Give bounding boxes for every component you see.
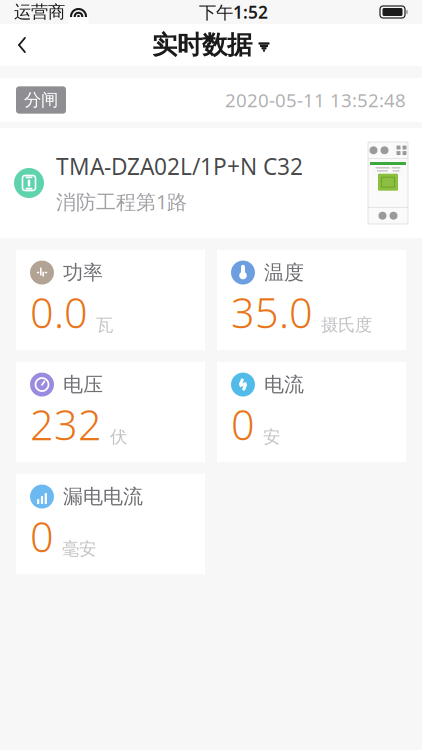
button[interactable]: 返回 xyxy=(0,25,44,65)
staticText: 消防工程第1路 xyxy=(56,188,187,215)
staticText: 运营商 xyxy=(14,1,65,23)
staticText: 毫安 xyxy=(62,538,96,560)
staticText: 实时数据 xyxy=(152,29,252,60)
button[interactable]: TMA-DZA02L/1P+N C32 xyxy=(0,128,422,238)
staticText: 2020-05-11 13:52:48 xyxy=(225,88,406,112)
staticText: 0 xyxy=(30,509,54,564)
staticText: 温度 xyxy=(264,260,304,285)
staticText: 0 xyxy=(231,397,255,452)
staticText: 安 xyxy=(263,426,280,448)
staticText: 瓦 xyxy=(96,314,113,336)
staticText: 功率 xyxy=(63,260,103,285)
staticText: 伏 xyxy=(110,426,127,448)
staticText: 232 xyxy=(30,397,102,452)
button[interactable]: 电压 xyxy=(16,362,205,462)
button[interactable]: 电流 xyxy=(217,362,406,462)
button[interactable]: 温度 xyxy=(217,250,406,350)
staticText: TMA-DZA02L/1P+N C32 xyxy=(56,151,303,181)
staticText: 35.0 xyxy=(231,285,313,340)
staticText: 电压 xyxy=(63,372,103,397)
staticText: 下午1:52 xyxy=(199,0,268,23)
button[interactable]: 漏电电流 xyxy=(16,474,205,574)
staticText: 0.0 xyxy=(30,285,88,340)
button[interactable]: 功率 xyxy=(16,250,205,350)
staticText: 分闸 xyxy=(24,89,58,111)
staticText: 漏电电流 xyxy=(63,484,143,509)
staticText: 电流 xyxy=(264,372,304,397)
staticText: 摄氏度 xyxy=(321,314,372,336)
